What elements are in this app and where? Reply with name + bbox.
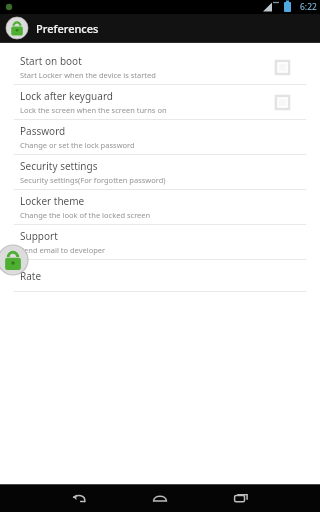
button[interactable]: Recent apps — [224, 484, 258, 512]
staticText: 6:22 — [300, 1, 317, 13]
staticText: Change or set the lock password — [20, 140, 135, 150]
button[interactable]: Start on boot — [272, 57, 292, 77]
button[interactable]: Locker theme — [0, 190, 320, 224]
staticText: Rate — [20, 269, 42, 283]
button[interactable]: Back — [62, 484, 96, 512]
button[interactable]: Security settings — [0, 155, 320, 189]
button[interactable]: Lock after keyguard — [272, 92, 292, 112]
staticText: Change the look of the locked screen — [20, 210, 151, 220]
button[interactable]: Home — [143, 484, 177, 512]
staticText: Locker theme — [20, 194, 85, 208]
staticText: Support — [20, 229, 58, 243]
staticText: Security settings(For forgotten password… — [20, 175, 166, 185]
staticText: Start on boot — [20, 54, 82, 68]
button[interactable]: Locker widget — [0, 245, 28, 275]
button[interactable]: Lock after keyguard — [0, 85, 320, 119]
staticText: Preferences — [36, 21, 99, 36]
staticText: Start Locker when the device is started — [20, 70, 156, 80]
button[interactable]: Rate — [0, 260, 320, 291]
staticText: Security settings — [20, 159, 98, 173]
button[interactable]: Support — [0, 225, 320, 259]
button[interactable]: Preferences — [0, 14, 320, 42]
button[interactable]: Password — [0, 120, 320, 154]
button[interactable]: Start on boot — [0, 50, 320, 84]
staticText: Lock after keyguard — [20, 89, 113, 103]
staticText: Lock the screen when the screen turns on — [20, 105, 167, 115]
staticText: Password — [20, 124, 66, 138]
staticText: Send email to developer — [20, 245, 106, 255]
